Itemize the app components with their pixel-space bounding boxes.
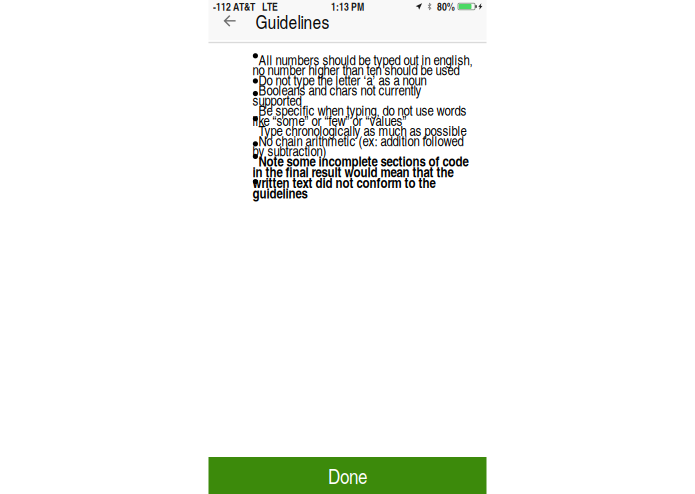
staticText: 1:13 PM [331,0,364,14]
staticText: LTE [262,0,278,14]
staticText: 80% [437,0,455,14]
button[interactable]: Back [223,15,236,27]
staticText: Done [328,461,367,490]
staticText: Guidelines [255,8,329,34]
staticText: -112 AT&T [213,0,255,14]
button[interactable]: Done [208,457,486,494]
staticText: All numbers should be typed out in engli… [252,50,472,203]
